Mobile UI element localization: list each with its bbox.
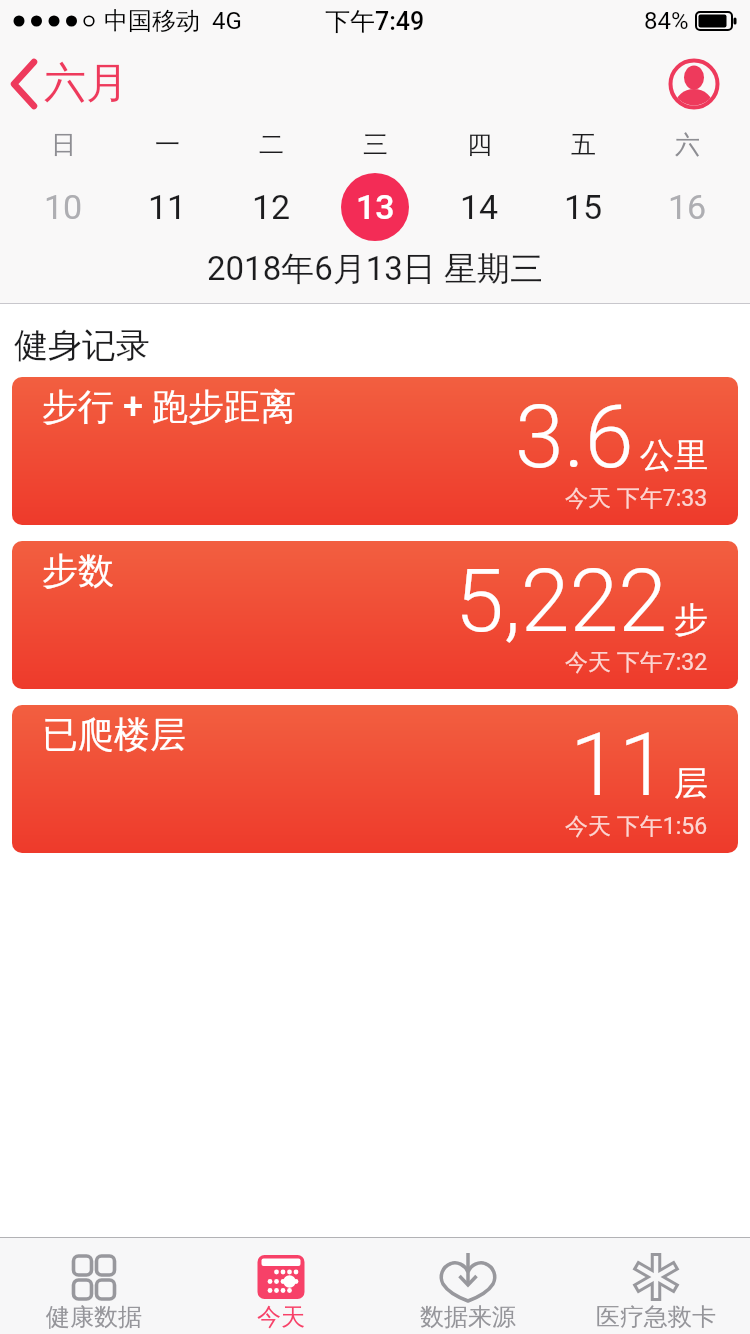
button[interactable]: 15 <box>564 187 603 227</box>
staticText: 4G <box>212 7 242 35</box>
button[interactable]: 今天 <box>187 1238 374 1334</box>
button[interactable]: 步数 <box>12 541 738 689</box>
button[interactable]: 六月 <box>0 57 128 110</box>
staticText: 11 <box>570 713 668 816</box>
staticText: 层 <box>674 762 708 805</box>
staticText: 六月 <box>44 57 128 110</box>
staticText: 二 <box>259 129 284 160</box>
staticText: 3.6 <box>515 385 634 488</box>
button[interactable]: 10 <box>44 187 83 227</box>
button[interactable]: 健康数据 <box>0 1238 187 1334</box>
staticText: 84% <box>644 7 689 35</box>
button[interactable]: 医疗急救卡 <box>562 1238 750 1334</box>
staticText: 中国移动 <box>104 6 200 36</box>
staticText: 今天 下午7:32 <box>565 648 708 677</box>
staticText: 医疗急救卡 <box>596 1302 716 1332</box>
button[interactable] <box>668 58 720 110</box>
staticText: 2018年6月13日 星期三 <box>207 248 544 290</box>
button[interactable]: 已爬楼层 <box>12 705 738 853</box>
staticText: 三 <box>363 129 388 160</box>
staticText: 今天 下午7:33 <box>565 484 708 513</box>
staticText: 日 <box>51 129 76 160</box>
staticText: 步行 + 跑步距离 <box>42 384 297 429</box>
staticText: 五 <box>571 129 596 160</box>
button[interactable]: 11 <box>148 187 187 227</box>
staticText: 公里 <box>640 434 708 477</box>
button[interactable]: 数据来源 <box>374 1238 562 1334</box>
staticText: 健康数据 <box>46 1302 142 1332</box>
staticText: 一 <box>155 129 180 160</box>
staticText: 13 <box>356 187 395 227</box>
staticText: 步 <box>674 598 708 641</box>
staticText: 六 <box>675 129 700 160</box>
staticText: 已爬楼层 <box>42 712 186 757</box>
staticText: 四 <box>467 129 492 160</box>
staticText: 今天 <box>257 1302 305 1332</box>
staticText: 今天 下午1:56 <box>565 812 708 841</box>
staticText: 数据来源 <box>420 1302 516 1332</box>
button[interactable]: 14 <box>460 187 499 227</box>
button[interactable]: 16 <box>668 187 707 227</box>
button[interactable]: 12 <box>252 187 291 227</box>
staticText: 步数 <box>42 548 114 593</box>
button[interactable]: 步行 + 跑步距离 <box>12 377 738 525</box>
button[interactable]: 13 <box>341 173 409 241</box>
staticText: 5,222 <box>455 549 668 652</box>
staticText: 下午7:49 <box>325 6 425 37</box>
staticText: 健身记录 <box>14 324 150 367</box>
